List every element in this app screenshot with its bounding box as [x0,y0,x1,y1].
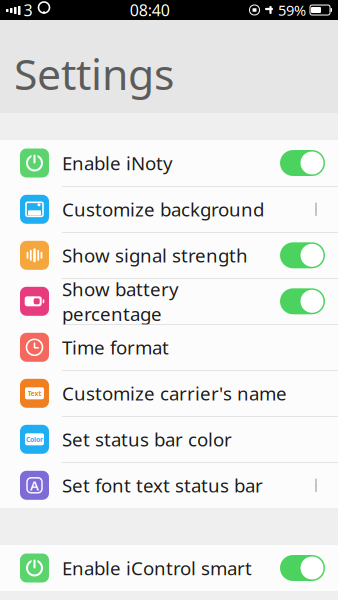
staticText: 59% [278,0,306,20]
staticText: Customize carrier's name [62,381,287,406]
button[interactable]: Color [0,416,338,462]
staticText: Settings [14,45,174,102]
staticText: Enable iNoty [62,151,173,175]
staticText: 3 [23,0,32,21]
button[interactable]: Text [0,370,338,416]
staticText: Show signal strength [62,243,248,268]
staticText: Set status bar color [62,427,232,452]
staticText: Set font text status bar [62,473,263,498]
staticText: Customize background [62,197,264,222]
staticText: Show battery percentage [62,276,179,326]
staticText: A [30,476,39,494]
staticText: Enable iControl smart [62,556,252,580]
staticText: Color [26,435,43,444]
button[interactable]: Show battery percentage [0,278,338,324]
button[interactable]: Customize background [0,186,338,232]
staticText: Time format [62,335,169,360]
button[interactable]: Show signal strength [0,232,338,278]
button[interactable]: Enable iControl smart [0,545,338,591]
staticText: Text [27,389,41,398]
button[interactable]: Enable iNoty [0,140,338,186]
button[interactable]: A [0,462,338,508]
button[interactable]: Time format [0,324,338,370]
staticText: 08:40 [130,0,170,21]
